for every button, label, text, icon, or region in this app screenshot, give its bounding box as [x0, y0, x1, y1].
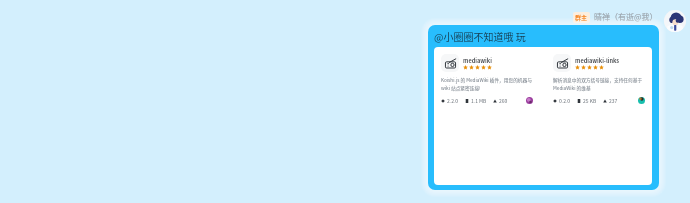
staticText: 1.1 MB — [471, 97, 487, 104]
staticText: 群主 — [575, 13, 588, 22]
staticText: 260 — [499, 97, 508, 104]
button[interactable]: @小圈圈不知道哦 玩 — [428, 25, 659, 190]
staticText: 晴禅（有逝@我） — [594, 11, 658, 23]
button[interactable]: Sender avatar — [664, 10, 686, 32]
staticText: @小圈圈不知道哦 玩 — [434, 29, 526, 43]
staticText: 解析消息中的双方括号链接，支持任何基于 MediaWiki 的维基 — [553, 77, 645, 91]
button[interactable]: mediawiki-links — [553, 54, 645, 104]
staticText: 2.2.0 — [447, 97, 459, 104]
staticText: Koishi.js 的 MediaWiki 插件，用您的机器与 wiki 站点紧… — [441, 77, 533, 91]
staticText: 237 — [609, 97, 618, 104]
staticText: 0.2.0 — [559, 97, 571, 104]
button[interactable]: mediawiki — [441, 54, 533, 104]
staticText: mediawiki — [463, 57, 492, 65]
staticText: mediawiki-links — [575, 57, 620, 65]
staticText: 25 KB — [583, 97, 597, 104]
